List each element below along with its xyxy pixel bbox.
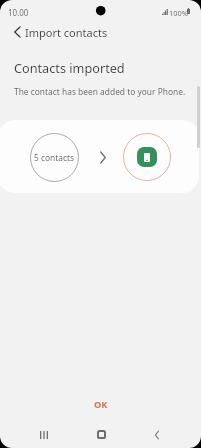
- staticText: 5 contacts: [34, 152, 75, 163]
- button[interactable]: OK: [78, 391, 123, 417]
- staticText: The contact has been added to your Phone…: [14, 86, 186, 97]
- staticText: 10.00: [8, 7, 29, 18]
- button[interactable]: 5 contacts: [0, 120, 199, 193]
- button[interactable]: Navigate up: [2, 17, 32, 47]
- staticText: Contacts imported: [14, 59, 125, 76]
- staticText: Import contacts: [25, 25, 108, 40]
- staticText: 100%: [169, 8, 188, 18]
- button[interactable]: Home: [79, 419, 123, 448]
- staticText: OK: [94, 398, 108, 411]
- button[interactable]: Recents: [22, 419, 66, 448]
- button[interactable]: Back: [135, 419, 179, 448]
